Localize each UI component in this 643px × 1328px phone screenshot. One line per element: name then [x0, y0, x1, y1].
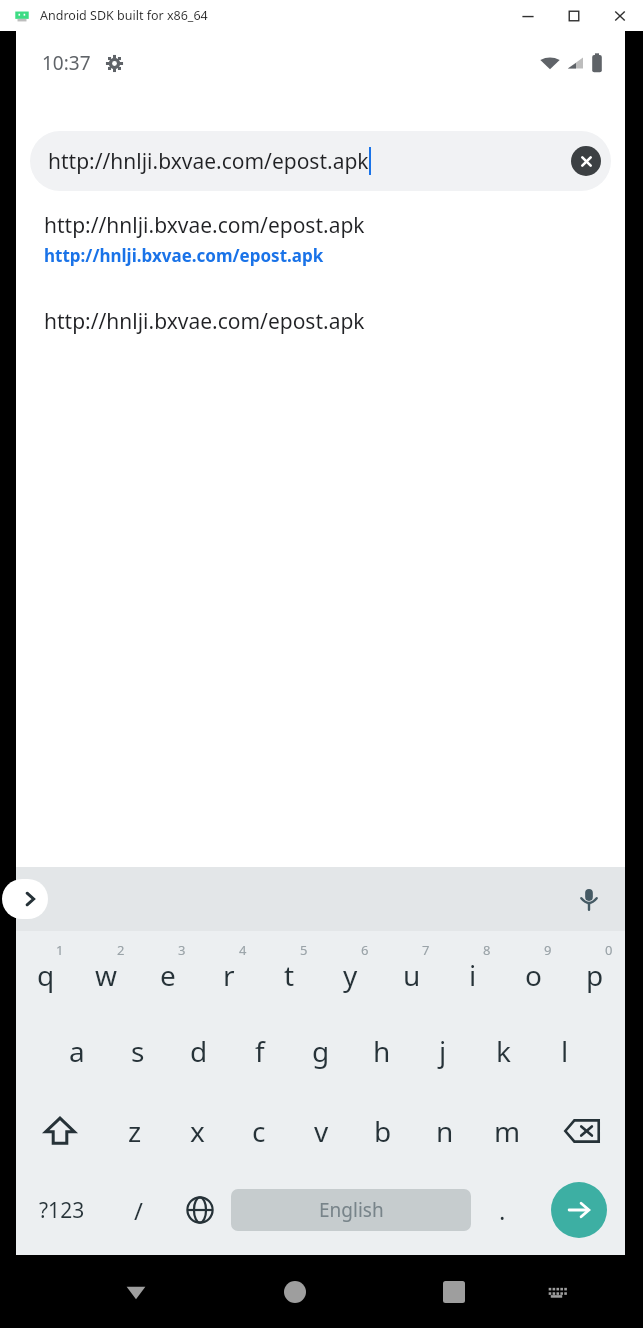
staticText: p — [586, 956, 604, 994]
button[interactable]: d — [168, 1011, 229, 1091]
staticText: http://hnlji.bxvae.com/epost.apk — [48, 147, 369, 176]
button[interactable]: p — [564, 931, 625, 1011]
staticText: ?123 — [39, 1196, 85, 1225]
button[interactable]: w — [76, 931, 137, 1011]
staticText: 2 — [117, 941, 125, 959]
staticText: m — [494, 1112, 521, 1150]
staticText: t — [284, 956, 295, 994]
button[interactable]: ?123 — [16, 1171, 107, 1249]
staticText: g — [312, 1032, 330, 1070]
button[interactable]: Keyboard indicator — [514, 1255, 600, 1328]
button[interactable]: Home — [252, 1255, 338, 1328]
staticText: http://hnlji.bxvae.com/epost.apk — [44, 307, 365, 336]
staticText: f — [255, 1032, 265, 1070]
button[interactable]: Expand suggestions — [2, 879, 48, 919]
staticText: y — [343, 956, 358, 994]
staticText: q — [37, 956, 55, 994]
staticText: / — [134, 1194, 143, 1227]
staticText: 1 — [56, 941, 64, 959]
button[interactable]: h — [351, 1011, 412, 1091]
staticText: o — [525, 956, 542, 994]
button[interactable]: http://hnlji.bxvae.com/epost.apk — [30, 131, 611, 191]
button[interactable]: r — [198, 931, 259, 1011]
button[interactable]: Back — [93, 1255, 179, 1328]
button[interactable]: l — [534, 1011, 595, 1091]
button[interactable]: / — [107, 1171, 169, 1249]
button[interactable]: x — [166, 1091, 228, 1171]
button[interactable]: k — [473, 1011, 534, 1091]
staticText: s — [131, 1032, 145, 1070]
staticText: 3 — [178, 941, 186, 959]
button[interactable]: Maximize — [551, 0, 597, 31]
staticText: k — [496, 1032, 511, 1070]
staticText: e — [160, 956, 176, 994]
button[interactable]: Minimize — [505, 0, 551, 31]
button[interactable]: i — [442, 931, 503, 1011]
staticText: 7 — [422, 941, 430, 959]
button[interactable]: Clear text — [571, 146, 601, 176]
staticText: w — [95, 956, 118, 994]
staticText: Android SDK built for x86_64 — [40, 7, 208, 24]
staticText: l — [561, 1032, 569, 1070]
staticText: English — [319, 1197, 384, 1223]
staticText: u — [403, 956, 421, 994]
button[interactable]: a — [46, 1011, 107, 1091]
staticText: c — [252, 1112, 266, 1150]
button[interactable]: e — [137, 931, 198, 1011]
button[interactable]: Voice input — [569, 879, 609, 919]
button[interactable]: z — [104, 1091, 166, 1171]
staticText: 4 — [239, 941, 247, 959]
staticText: b — [374, 1112, 392, 1150]
button[interactable]: y — [320, 931, 381, 1011]
button[interactable]: Change language — [169, 1171, 231, 1249]
staticText: . — [499, 1194, 506, 1227]
staticText: 0 — [605, 941, 613, 959]
staticText: x — [190, 1112, 205, 1150]
staticText: h — [373, 1032, 391, 1070]
button[interactable]: Backspace — [538, 1091, 625, 1171]
button[interactable]: b — [352, 1091, 414, 1171]
staticText: z — [128, 1112, 142, 1150]
button[interactable]: n — [414, 1091, 476, 1171]
staticText: d — [190, 1032, 208, 1070]
staticText: i — [469, 956, 477, 994]
button[interactable]: Close — [597, 0, 643, 31]
button[interactable]: j — [412, 1011, 473, 1091]
staticText: 6 — [361, 941, 369, 959]
staticText: j — [439, 1032, 447, 1070]
staticText: r — [223, 956, 235, 994]
staticText: a — [69, 1032, 85, 1070]
button[interactable]: g — [290, 1011, 351, 1091]
button[interactable]: u — [381, 931, 442, 1011]
staticText: 9 — [544, 941, 552, 959]
button[interactable]: q — [16, 931, 76, 1011]
staticText: 10:37 — [42, 50, 91, 76]
button[interactable]: o — [503, 931, 564, 1011]
button[interactable]: Recent apps — [411, 1255, 497, 1328]
button[interactable]: http://hnlji.bxvae.com/epost.apk — [16, 307, 625, 342]
button[interactable]: f — [229, 1011, 290, 1091]
button[interactable]: English — [231, 1189, 471, 1231]
button[interactable]: v — [290, 1091, 352, 1171]
button[interactable]: . — [471, 1171, 533, 1249]
button[interactable]: s — [107, 1011, 168, 1091]
staticText: 8 — [483, 941, 491, 959]
staticText: n — [436, 1112, 454, 1150]
button[interactable]: t — [259, 931, 320, 1011]
button[interactable]: c — [228, 1091, 290, 1171]
staticText: http://hnlji.bxvae.com/epost.apk — [44, 211, 365, 240]
staticText: http://hnlji.bxvae.com/epost.apk — [44, 244, 324, 267]
button[interactable]: Shift — [16, 1091, 104, 1171]
button[interactable]: m — [476, 1091, 538, 1171]
button[interactable]: Go — [551, 1182, 607, 1238]
button[interactable]: http://hnlji.bxvae.com/epost.apk — [16, 207, 625, 269]
staticText: v — [314, 1112, 329, 1150]
staticText: 5 — [300, 941, 308, 959]
